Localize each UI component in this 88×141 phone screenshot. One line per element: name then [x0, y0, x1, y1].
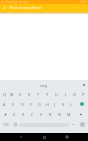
button[interactable]: E	[16, 89, 25, 99]
button[interactable]: P	[79, 89, 88, 99]
staticText: P	[82, 92, 85, 97]
staticText: D	[21, 102, 24, 107]
button[interactable]: U	[52, 89, 61, 99]
button[interactable]: Shift	[0, 109, 10, 119]
staticText: O	[73, 92, 76, 97]
staticText: C	[31, 112, 34, 117]
button[interactable]: Emoji	[11, 119, 19, 130]
button[interactable]: Backspace	[73, 109, 88, 119]
staticText: R	[28, 92, 31, 97]
button[interactable]: X	[19, 109, 28, 119]
button[interactable]: W	[8, 89, 16, 99]
button[interactable]: Expand suggestions	[80, 80, 88, 89]
staticText: 10:42	[80, 0, 87, 4]
button[interactable]: Voice search	[70, 4, 79, 12]
staticText: B	[49, 112, 52, 117]
button[interactable]: V	[37, 109, 46, 119]
staticText: G	[38, 102, 41, 107]
button[interactable]: Back	[0, 4, 9, 12]
button[interactable]: Z	[10, 109, 19, 119]
button[interactable]: Back	[17, 133, 25, 141]
staticText: S	[12, 102, 15, 107]
button[interactable]: T	[34, 89, 43, 99]
button[interactable]: More options	[79, 4, 88, 12]
staticText: Incoming message	[5, 0, 29, 4]
button[interactable]: H	[43, 99, 51, 109]
staticText: M	[67, 112, 71, 117]
staticText: L	[70, 102, 72, 107]
staticText: W	[10, 92, 14, 97]
button[interactable]: J	[51, 99, 59, 109]
button[interactable]: Q	[0, 89, 8, 99]
button[interactable]: G	[35, 99, 43, 109]
staticText: Find everywhere	[9, 5, 42, 11]
button[interactable]: New line	[77, 119, 88, 130]
button[interactable]: S	[9, 99, 18, 109]
staticText: K	[62, 102, 65, 107]
button[interactable]: Y	[43, 89, 52, 99]
staticText: J	[54, 102, 56, 107]
button[interactable]: C	[28, 109, 37, 119]
staticText: I	[65, 92, 67, 97]
button[interactable]: Symbols	[0, 119, 11, 130]
button[interactable]: K	[59, 99, 67, 109]
staticText: E	[19, 92, 22, 97]
staticText: A	[3, 102, 6, 107]
button[interactable]: N	[55, 109, 64, 119]
button[interactable]: I	[61, 89, 70, 99]
staticText: ?123	[3, 123, 9, 127]
button[interactable]: O	[70, 89, 79, 99]
button[interactable]: F	[27, 99, 35, 109]
staticText: T	[37, 92, 40, 97]
button[interactable]: Period	[69, 119, 77, 130]
button[interactable]: Home	[40, 133, 48, 141]
button[interactable]: R	[25, 89, 34, 99]
staticText: Y	[46, 92, 49, 97]
staticText: V	[40, 112, 43, 117]
staticText: xing	[40, 83, 48, 88]
staticText: Z	[13, 112, 16, 117]
button[interactable]: L	[67, 99, 75, 109]
staticText: U	[55, 92, 58, 97]
staticText: X	[22, 112, 25, 117]
button[interactable]: B	[46, 109, 55, 119]
button[interactable]: D	[18, 99, 27, 109]
staticText: F	[30, 102, 32, 107]
button[interactable]: Recent apps	[63, 133, 71, 141]
staticText: Q	[3, 92, 6, 97]
staticText: H	[46, 102, 49, 107]
button[interactable]: M	[64, 109, 73, 119]
button[interactable]: A	[0, 99, 9, 109]
staticText: N	[58, 112, 61, 117]
button[interactable]: Search	[75, 99, 88, 109]
